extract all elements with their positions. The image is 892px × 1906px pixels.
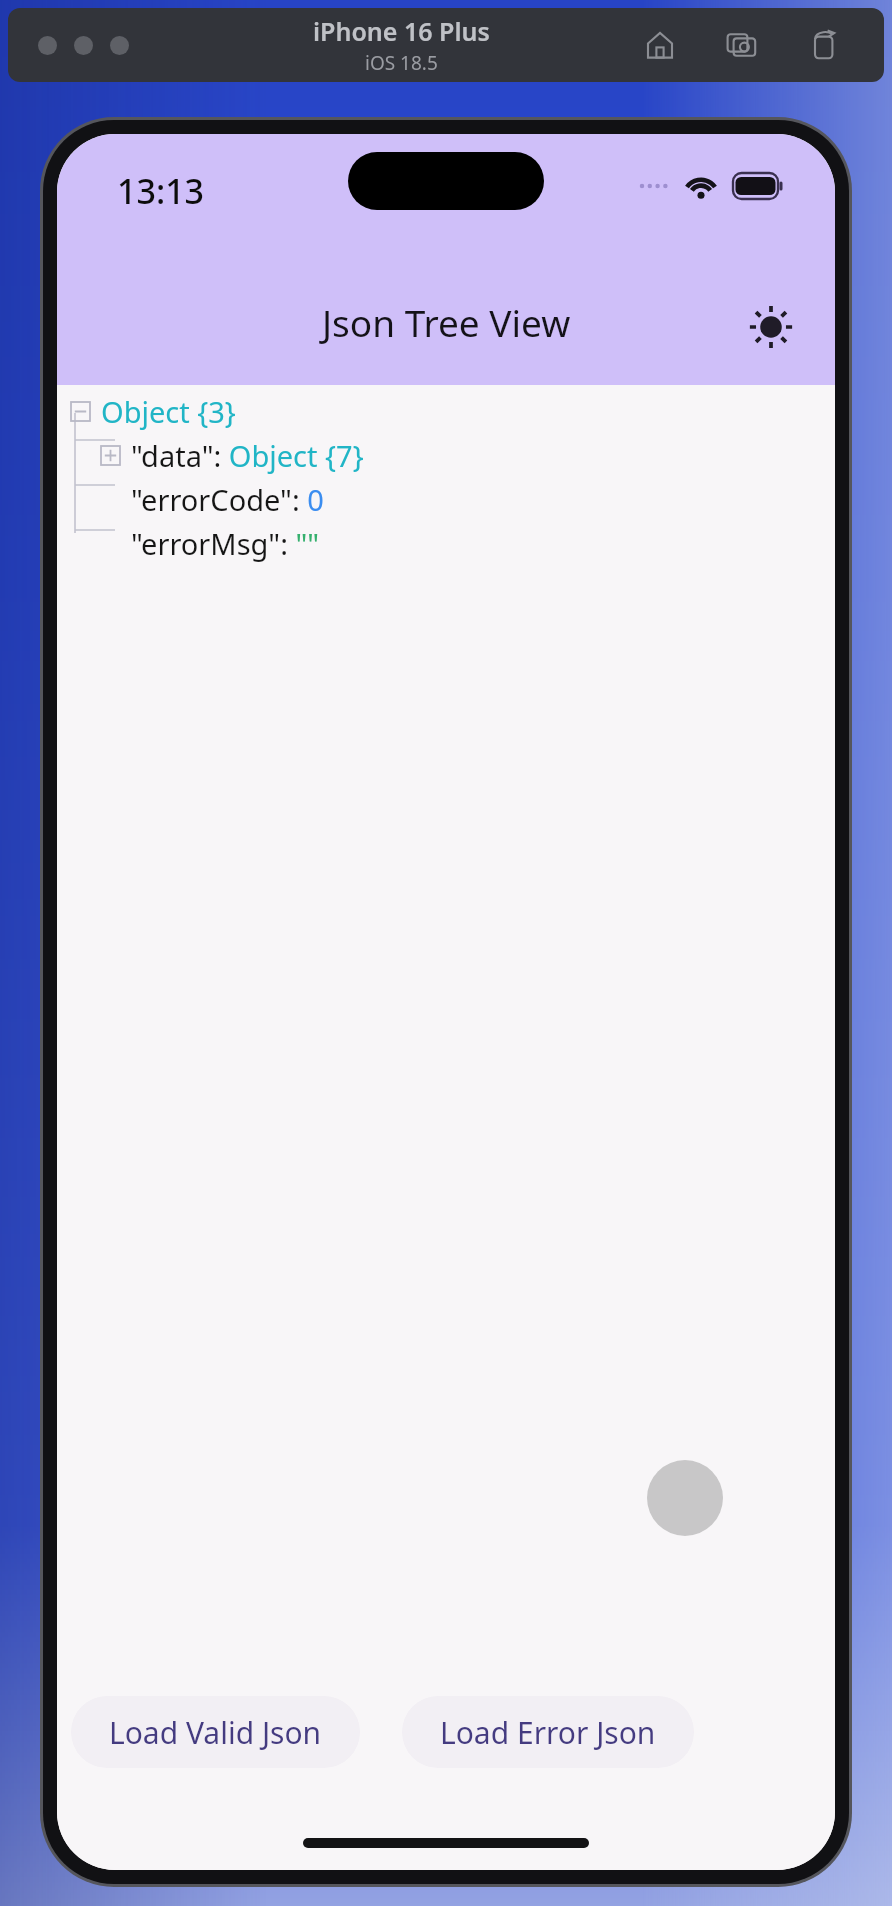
button[interactable]: Load Valid Json (71, 1696, 360, 1768)
staticText: "data": Object {7} (131, 436, 364, 475)
button[interactable]: Load Error Json (402, 1696, 694, 1768)
staticText: iOS 18.5 (365, 50, 438, 76)
staticText: Load Error Json (440, 1712, 656, 1753)
button[interactable] (74, 36, 93, 55)
staticText: Json Tree View (322, 297, 571, 347)
button[interactable]: Toggle theme (741, 297, 801, 357)
staticText: Object {3} (101, 392, 236, 431)
button[interactable]: Rotate (802, 23, 846, 67)
button[interactable] (38, 36, 57, 55)
button[interactable]: Home (638, 23, 682, 67)
staticText: "errorMsg": "" (131, 524, 320, 563)
button[interactable]: Screenshot (720, 23, 764, 67)
staticText: iPhone 16 Plus (313, 14, 490, 48)
staticText: 13:13 (117, 168, 205, 214)
staticText: "errorCode": 0 (131, 480, 324, 519)
staticText: Load Valid Json (109, 1712, 322, 1753)
button[interactable]: Object {3} (63, 389, 835, 433)
button[interactable] (110, 36, 129, 55)
button[interactable]: "errorCode": 0 (63, 477, 835, 521)
button[interactable]: "data": Object {7} (63, 433, 835, 477)
button[interactable]: "errorMsg": "" (63, 521, 835, 565)
